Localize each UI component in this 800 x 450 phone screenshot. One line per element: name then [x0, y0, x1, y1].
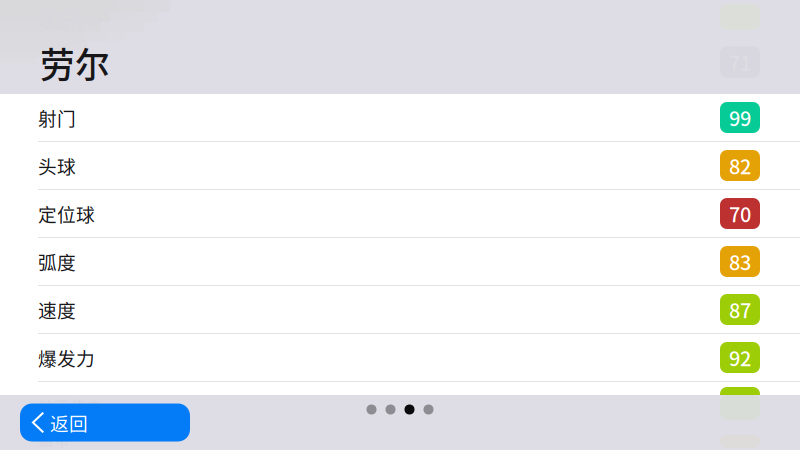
- staticText: 盘带: [38, 427, 70, 450]
- button[interactable]: 头球: [0, 142, 800, 190]
- button[interactable]: 爆发力: [0, 334, 800, 382]
- button[interactable]: 速度: [0, 286, 800, 334]
- button[interactable]: 返回: [20, 403, 190, 441]
- staticText: 99: [729, 103, 751, 132]
- staticText: 头球: [38, 152, 76, 179]
- staticText: 返回: [50, 409, 88, 436]
- button[interactable]: 定位球: [0, 190, 800, 238]
- staticText: 87: [729, 295, 751, 324]
- staticText: 92: [729, 343, 751, 372]
- button[interactable]: 射门: [0, 94, 800, 142]
- staticText: 83: [729, 247, 751, 276]
- staticText: 定位球: [38, 200, 95, 227]
- staticText: 爆发力: [38, 344, 95, 371]
- button[interactable]: 弧度: [0, 238, 800, 286]
- staticText: 地面传中: [38, 395, 102, 418]
- staticText: 弧度: [38, 248, 76, 275]
- staticText: 射门: [38, 104, 76, 131]
- staticText: 82: [729, 151, 751, 180]
- staticText: 70: [729, 199, 751, 228]
- staticText: 劳尔: [40, 38, 110, 88]
- staticText: 速度: [38, 296, 76, 323]
